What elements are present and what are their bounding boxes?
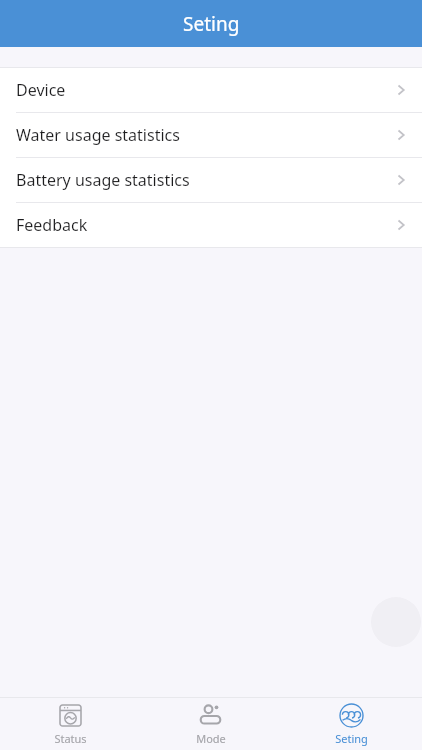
- button[interactable]: Device: [0, 68, 422, 112]
- staticText: Status: [54, 731, 87, 746]
- staticText: Device: [16, 79, 66, 101]
- staticText: Feedback: [16, 214, 88, 236]
- button[interactable]: Seting: [281, 698, 422, 750]
- button[interactable]: Battery usage statistics: [0, 157, 422, 202]
- staticText: Seting: [183, 11, 240, 37]
- button[interactable]: Status: [0, 698, 140, 750]
- button[interactable]: Mode: [140, 698, 281, 750]
- button[interactable]: Water usage statistics: [0, 112, 422, 157]
- staticText: Mode: [196, 731, 226, 746]
- staticText: Water usage statistics: [16, 124, 180, 146]
- staticText: Battery usage statistics: [16, 169, 190, 191]
- staticText: Seting: [335, 731, 368, 746]
- button[interactable]: Feedback: [0, 202, 422, 247]
